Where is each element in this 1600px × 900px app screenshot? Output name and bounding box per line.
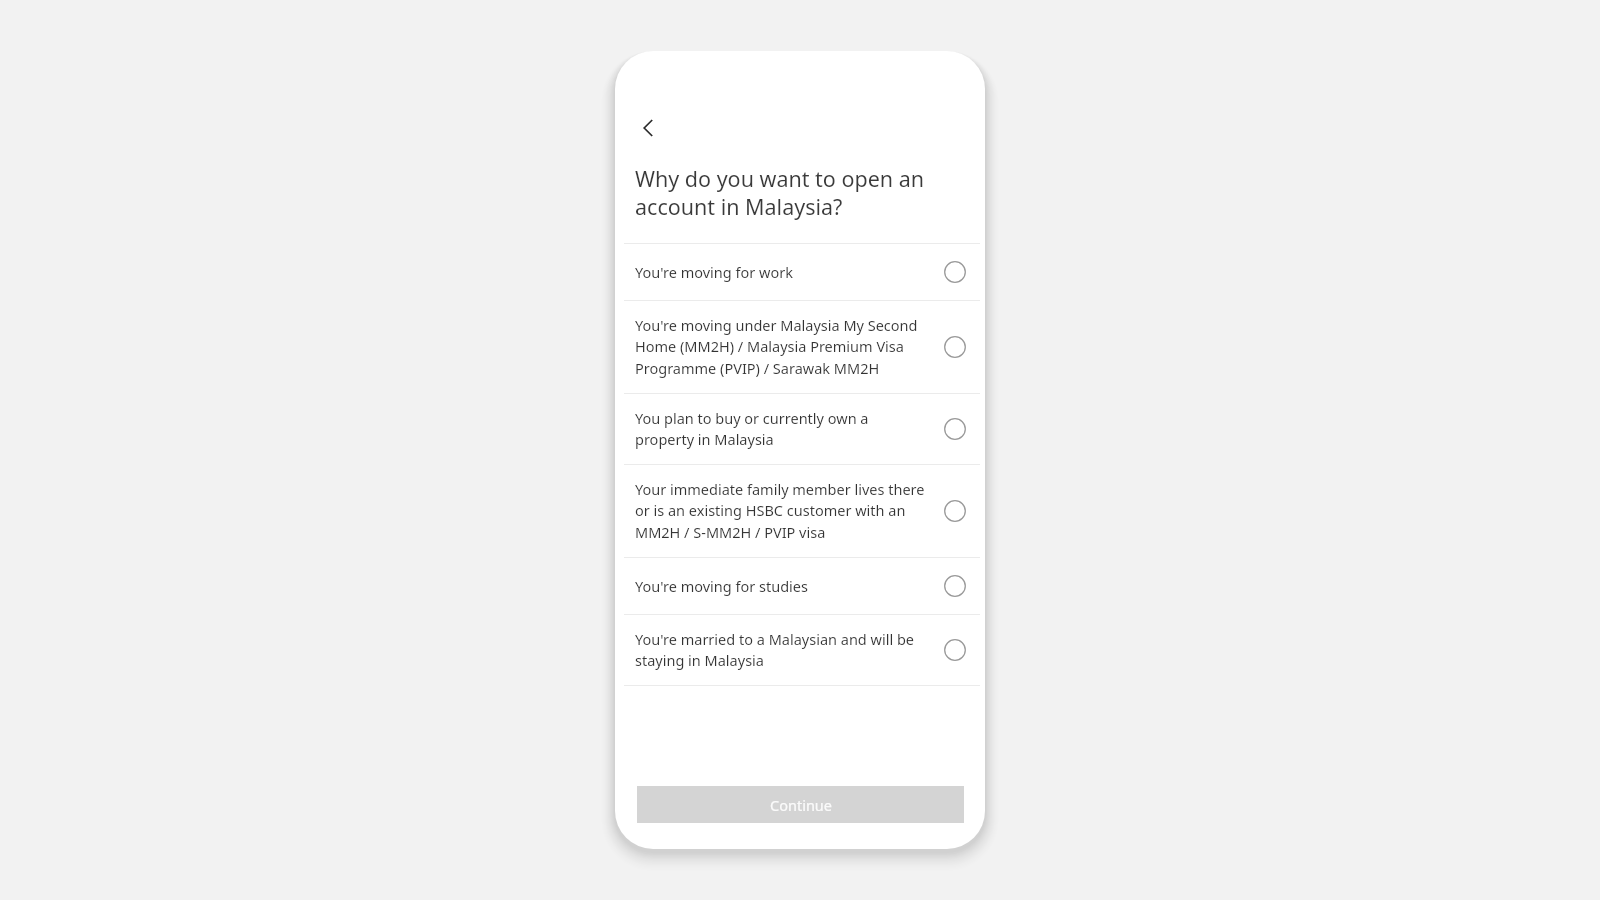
staticText: Continue: [770, 795, 832, 815]
button[interactable]: Select option: [941, 333, 969, 361]
button[interactable]: Back: [627, 106, 671, 150]
staticText: Your immediate family member lives there…: [635, 479, 931, 543]
button[interactable]: Select option: [941, 636, 969, 664]
staticText: You're married to a Malaysian and will b…: [635, 629, 931, 671]
staticText: You plan to buy or currently own a prope…: [635, 408, 931, 450]
button[interactable]: You're moving for studies: [615, 558, 985, 614]
button[interactable]: You're moving under Malaysia My Second H…: [615, 301, 985, 393]
button[interactable]: Select option: [941, 497, 969, 525]
button[interactable]: You're married to a Malaysian and will b…: [615, 615, 985, 685]
button[interactable]: You plan to buy or currently own a prope…: [615, 394, 985, 464]
button[interactable]: Select option: [941, 572, 969, 600]
button[interactable]: Select option: [941, 258, 969, 286]
staticText: Why do you want to open an account in Ma…: [635, 164, 929, 221]
staticText: You're moving for studies: [635, 576, 931, 596]
button[interactable]: Your immediate family member lives there…: [615, 465, 985, 557]
button[interactable]: Select option: [941, 415, 969, 443]
staticText: You're moving for work: [635, 262, 931, 282]
staticText: You're moving under Malaysia My Second H…: [635, 315, 931, 379]
button[interactable]: You're moving for work: [615, 244, 985, 300]
button[interactable]: Continue: [637, 786, 964, 823]
